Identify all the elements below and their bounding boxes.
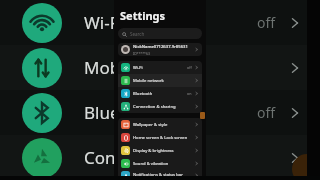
staticText: Search: [130, 31, 145, 37]
staticText: NickName0712637.9r85631: [133, 44, 188, 50]
button[interactable]: Sound & vibration: [118, 157, 202, 170]
button[interactable]: Bluetooth: [118, 87, 202, 100]
staticText: ID*****63: [133, 51, 150, 56]
staticText: off: [257, 13, 276, 32]
staticText: Display & brightness: [133, 148, 194, 154]
button[interactable]: Mobile network: [118, 74, 202, 87]
staticText: on: [187, 91, 192, 96]
button[interactable]: Home screen & Lock screen: [118, 131, 202, 144]
button[interactable]: Bluetoo: [0, 90, 320, 135]
staticText: Mobile network: [133, 78, 194, 84]
staticText: Bluetoo: [84, 101, 147, 124]
staticText: Wi-Fi: [84, 11, 123, 34]
button[interactable]: Mobile n: [0, 45, 320, 90]
button[interactable]: Search: [118, 28, 202, 39]
staticText: off: [187, 65, 192, 70]
staticText: Sound & vibration: [133, 161, 194, 167]
staticText: off: [257, 103, 276, 122]
button[interactable]: Wi-Fi: [118, 61, 202, 74]
staticText: Bluetooth: [133, 91, 187, 97]
staticText: Connec: [84, 146, 144, 169]
button[interactable]: Notifications & status bar: [118, 170, 202, 180]
staticText: Wallpaper & style: [133, 122, 194, 128]
staticText: Mobile n: [84, 56, 154, 79]
staticText: Wi-Fi: [133, 65, 187, 71]
button[interactable]: Wi-Fi: [0, 0, 320, 45]
button[interactable]: Connec: [0, 135, 320, 180]
staticText: Home screen & Lock screen: [133, 135, 194, 141]
button[interactable]: Display & brightness: [118, 144, 202, 157]
staticText: Connection & sharing: [133, 104, 194, 110]
button[interactable]: Wallpaper & style: [118, 118, 202, 131]
staticText: Notifications & status bar: [133, 172, 194, 178]
button[interactable]: NickName0712637.9r85631: [118, 43, 202, 56]
staticText: Settings: [120, 8, 166, 23]
button[interactable]: Connection & sharing: [118, 100, 202, 113]
